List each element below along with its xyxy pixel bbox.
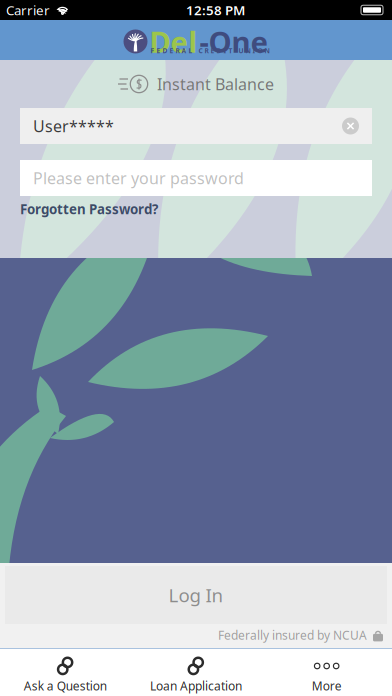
staticText: Carrier bbox=[6, 1, 50, 19]
staticText: F E D E R A L C R E D I T U N I O N bbox=[150, 46, 269, 55]
button[interactable]: Forgotten Password? bbox=[0, 196, 392, 222]
button[interactable]: Log In bbox=[0, 563, 392, 624]
staticText: More bbox=[312, 678, 342, 694]
staticText: Ask a Question bbox=[24, 678, 107, 694]
staticText: -One bbox=[199, 22, 268, 61]
button[interactable]: User***** bbox=[0, 108, 392, 144]
staticText: Instant Balance bbox=[157, 73, 274, 95]
button[interactable]: Ask a Question bbox=[0, 649, 131, 696]
button[interactable]: More bbox=[261, 649, 392, 696]
staticText: Please enter your password bbox=[33, 167, 244, 189]
button[interactable]: Instant Balance bbox=[0, 60, 392, 108]
staticText: Log In bbox=[168, 583, 223, 607]
button[interactable]: Please enter your password bbox=[0, 160, 392, 196]
staticText: Forgotten Password? bbox=[20, 200, 158, 218]
staticText: User***** bbox=[33, 115, 114, 137]
staticText: Del bbox=[149, 22, 197, 61]
button[interactable]: Loan Application bbox=[131, 649, 261, 696]
staticText: 12:58 PM bbox=[186, 1, 245, 19]
staticText: Loan Application bbox=[150, 678, 242, 694]
staticText: Federally insured by NCUA bbox=[218, 627, 367, 643]
